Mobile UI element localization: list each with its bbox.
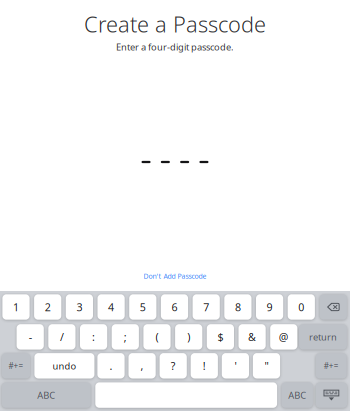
button[interactable]: 8 xyxy=(224,294,251,320)
button[interactable]: Delete xyxy=(320,294,347,320)
staticText: " xyxy=(264,359,268,373)
staticText: ABC xyxy=(288,389,306,401)
staticText: #+= xyxy=(8,360,23,371)
button[interactable]: ABC xyxy=(2,382,91,408)
staticText: & xyxy=(248,330,256,344)
staticText: 9 xyxy=(267,300,273,314)
staticText: ' xyxy=(234,359,236,373)
staticText: ! xyxy=(203,359,206,373)
button[interactable]: ? xyxy=(160,353,187,378)
staticText: Enter a four-digit passcode. xyxy=(116,41,234,53)
button[interactable]: - xyxy=(17,324,44,350)
button[interactable]: 5 xyxy=(129,294,156,320)
button[interactable]: Hide Keyboard xyxy=(316,382,347,408)
staticText: - xyxy=(29,330,32,344)
staticText: ( xyxy=(155,330,158,344)
staticText: : xyxy=(92,330,95,344)
button[interactable]: : xyxy=(80,324,107,350)
button[interactable]: ABC xyxy=(281,382,313,408)
button[interactable]: ' xyxy=(222,353,249,378)
staticText: 6 xyxy=(171,300,177,314)
staticText: 8 xyxy=(235,300,241,314)
button[interactable]: , xyxy=(128,353,156,378)
staticText: 2 xyxy=(45,300,51,314)
staticText: undo xyxy=(52,360,76,372)
button[interactable]: 6 xyxy=(161,294,188,320)
staticText: ABC xyxy=(37,389,55,401)
button[interactable]: space xyxy=(95,382,277,408)
button[interactable]: 4 xyxy=(97,294,125,320)
staticText: , xyxy=(141,359,144,373)
button[interactable]: $ xyxy=(207,324,234,350)
staticText: $ xyxy=(217,330,223,344)
button[interactable]: @ xyxy=(270,324,297,350)
staticText: ) xyxy=(187,330,190,344)
button[interactable]: ( xyxy=(143,324,171,350)
staticText: ? xyxy=(171,359,176,373)
button[interactable]: 9 xyxy=(256,294,283,320)
button[interactable]: ; xyxy=(112,324,139,350)
button[interactable]: Don't Add Passcode xyxy=(137,267,212,285)
staticText: ; xyxy=(124,330,127,344)
button[interactable]: / xyxy=(48,324,75,350)
staticText: 3 xyxy=(76,300,82,314)
staticText: #+= xyxy=(324,360,339,371)
staticText: 4 xyxy=(108,300,114,314)
staticText: 1 xyxy=(13,300,19,314)
button[interactable]: 1 xyxy=(2,294,30,320)
button[interactable]: 7 xyxy=(193,294,220,320)
staticText: 5 xyxy=(140,300,146,314)
button[interactable]: . xyxy=(97,353,125,378)
button[interactable]: return xyxy=(299,324,347,350)
button[interactable]: 2 xyxy=(34,294,61,320)
staticText: Create a Passcode xyxy=(84,9,266,39)
button[interactable]: 0 xyxy=(288,294,315,320)
staticText: . xyxy=(109,359,112,373)
staticText: Don't Add Passcode xyxy=(143,271,206,281)
staticText: return xyxy=(309,331,337,343)
staticText: / xyxy=(60,330,64,344)
button[interactable]: ) xyxy=(175,324,202,350)
button[interactable]: #+= xyxy=(316,353,347,378)
staticText: 0 xyxy=(298,300,304,314)
button[interactable]: #+= xyxy=(2,353,30,378)
button[interactable]: ! xyxy=(191,353,218,378)
button[interactable]: undo xyxy=(34,353,94,378)
button[interactable]: 3 xyxy=(66,294,93,320)
staticText: @ xyxy=(279,330,289,344)
button[interactable]: " xyxy=(253,353,280,378)
button[interactable]: & xyxy=(238,324,266,350)
staticText: 7 xyxy=(203,300,209,314)
